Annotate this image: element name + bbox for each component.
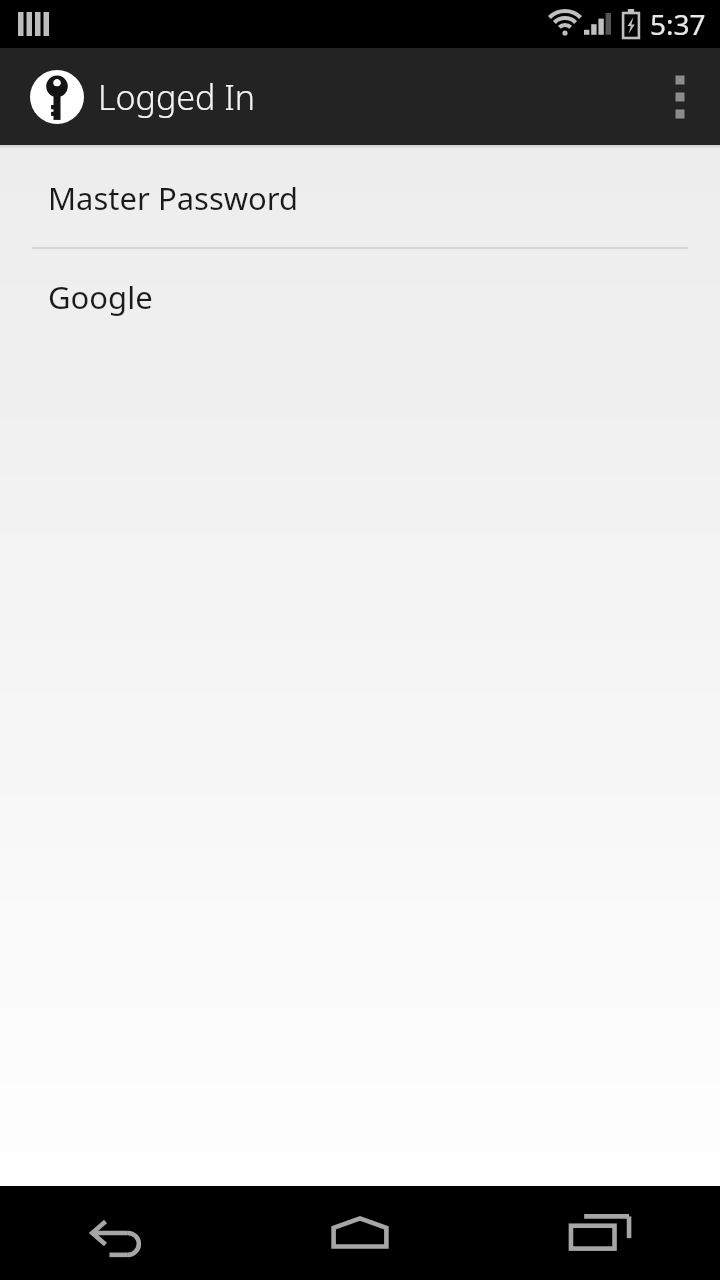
button[interactable]: Recent apps	[480, 1186, 720, 1280]
button[interactable]: More options	[640, 48, 720, 145]
button[interactable]: Home	[240, 1186, 480, 1280]
staticText: Logged In	[98, 74, 256, 120]
button[interactable]: Back	[0, 1186, 240, 1280]
staticText: 5:37	[650, 5, 706, 43]
button[interactable]: Master Password	[0, 149, 720, 247]
button[interactable]: Google	[0, 249, 720, 345]
staticText: Google	[48, 276, 153, 318]
staticText: Master Password	[48, 177, 299, 219]
